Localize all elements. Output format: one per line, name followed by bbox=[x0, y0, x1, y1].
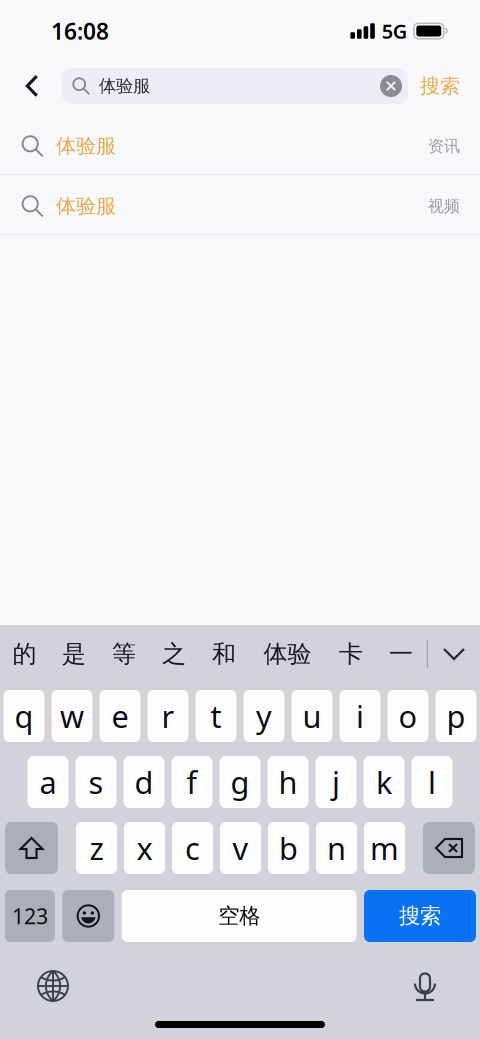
button[interactable]: o bbox=[387, 690, 428, 742]
staticText: s bbox=[88, 762, 103, 802]
button[interactable]: c bbox=[172, 822, 213, 874]
staticText: 是 bbox=[62, 639, 86, 669]
button[interactable]: e bbox=[99, 690, 140, 742]
button[interactable]: 空格 bbox=[122, 890, 357, 942]
staticText: 16:08 bbox=[51, 16, 109, 46]
button[interactable]: y bbox=[243, 690, 284, 742]
staticText: 等 bbox=[112, 639, 136, 669]
button[interactable]: 123 bbox=[5, 890, 55, 942]
staticText: k bbox=[376, 762, 392, 802]
staticText: d bbox=[134, 762, 153, 802]
button[interactable]: Emoji bbox=[62, 890, 114, 942]
button[interactable]: 等 bbox=[99, 625, 149, 683]
staticText: 搜索 bbox=[399, 903, 441, 929]
button[interactable]: s bbox=[75, 756, 116, 808]
button[interactable]: Shift bbox=[5, 822, 58, 874]
staticText: 资讯 bbox=[428, 136, 460, 156]
staticText: x bbox=[136, 828, 152, 868]
staticText: f bbox=[186, 762, 197, 802]
staticText: w bbox=[60, 696, 84, 736]
staticText: 视频 bbox=[428, 196, 460, 216]
staticText: 之 bbox=[162, 639, 186, 669]
button[interactable]: Next keyboard bbox=[31, 964, 75, 1008]
button[interactable]: n bbox=[316, 822, 357, 874]
staticText: c bbox=[185, 828, 200, 868]
staticText: j bbox=[332, 762, 340, 802]
staticText: i bbox=[356, 696, 364, 736]
button[interactable]: x bbox=[124, 822, 165, 874]
button[interactable]: Delete bbox=[423, 822, 475, 874]
staticText: 卡 bbox=[339, 639, 363, 669]
staticText: r bbox=[161, 696, 174, 736]
staticText: 体验服 bbox=[56, 134, 116, 158]
button[interactable]: v bbox=[220, 822, 261, 874]
staticText: 和 bbox=[212, 639, 236, 669]
staticText: y bbox=[256, 696, 272, 736]
staticText: o bbox=[398, 696, 417, 736]
staticText: l bbox=[428, 762, 436, 802]
staticText: q bbox=[14, 696, 33, 736]
staticText: 体验 bbox=[263, 639, 311, 669]
button[interactable]: h bbox=[267, 756, 308, 808]
button[interactable]: 体验服 bbox=[51, 68, 408, 104]
staticText: h bbox=[278, 762, 297, 802]
button[interactable]: g bbox=[219, 756, 260, 808]
button[interactable]: w bbox=[51, 690, 92, 742]
staticText: 一 bbox=[389, 639, 413, 669]
button[interactable]: l bbox=[411, 756, 452, 808]
staticText: g bbox=[230, 762, 249, 802]
staticText: 空格 bbox=[218, 903, 260, 929]
button[interactable]: a bbox=[27, 756, 68, 808]
button[interactable]: b bbox=[268, 822, 309, 874]
staticText: n bbox=[327, 828, 346, 868]
button[interactable]: z bbox=[76, 822, 117, 874]
button[interactable]: 搜索 bbox=[420, 64, 480, 108]
staticText: z bbox=[89, 828, 103, 868]
button[interactable]: f bbox=[171, 756, 212, 808]
staticText: t bbox=[210, 696, 221, 736]
button[interactable]: 和 bbox=[199, 625, 249, 683]
staticText: p bbox=[446, 696, 465, 736]
button[interactable]: Hide candidates bbox=[428, 625, 480, 683]
button[interactable]: 搜索 bbox=[364, 890, 476, 942]
button[interactable]: i bbox=[339, 690, 380, 742]
button[interactable]: 之 bbox=[149, 625, 199, 683]
button[interactable]: 一 bbox=[376, 625, 426, 683]
button[interactable]: u bbox=[291, 690, 332, 742]
button[interactable]: Back bbox=[13, 64, 51, 108]
staticText: 体验服 bbox=[56, 194, 116, 218]
staticText: a bbox=[39, 762, 56, 802]
button[interactable]: 卡 bbox=[326, 625, 376, 683]
staticText: e bbox=[111, 696, 128, 736]
button[interactable]: k bbox=[363, 756, 404, 808]
staticText: m bbox=[370, 828, 399, 868]
button[interactable]: m bbox=[364, 822, 405, 874]
staticText: 123 bbox=[12, 902, 48, 930]
staticText: 5G bbox=[382, 18, 408, 44]
button[interactable]: 体验服 bbox=[0, 175, 480, 235]
button[interactable]: 是 bbox=[49, 625, 99, 683]
staticText: 的 bbox=[12, 639, 36, 669]
button[interactable]: r bbox=[147, 690, 188, 742]
button[interactable]: t bbox=[195, 690, 236, 742]
button[interactable]: 的 bbox=[0, 625, 49, 683]
staticText: 体验服 bbox=[99, 75, 150, 97]
staticText: b bbox=[279, 828, 298, 868]
button[interactable]: d bbox=[123, 756, 164, 808]
button[interactable]: j bbox=[315, 756, 356, 808]
staticText: 搜索 bbox=[420, 74, 460, 98]
button[interactable]: p bbox=[435, 690, 476, 742]
button[interactable]: 体验服 bbox=[0, 115, 480, 175]
staticText: u bbox=[302, 696, 321, 736]
staticText: v bbox=[232, 828, 248, 868]
button[interactable]: 体验 bbox=[249, 625, 326, 683]
button[interactable]: q bbox=[3, 690, 44, 742]
button[interactable]: Dictation bbox=[403, 964, 447, 1008]
